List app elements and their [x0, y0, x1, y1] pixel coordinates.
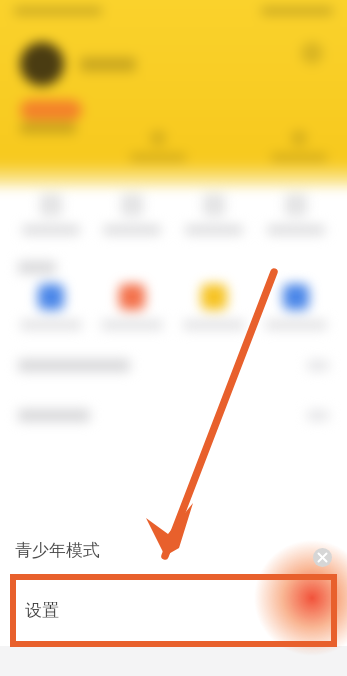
staticText: 设置 [25, 600, 59, 621]
button[interactable] [10, 284, 91, 330]
button[interactable]: Close [313, 548, 332, 567]
button[interactable]: 设置 [13, 577, 334, 644]
button[interactable] [0, 402, 347, 428]
button[interactable] [255, 284, 337, 330]
button[interactable] [255, 194, 337, 235]
button[interactable]: 青少年模式 [0, 524, 347, 576]
staticText: 青少年模式 [15, 540, 100, 561]
button[interactable] [91, 194, 173, 235]
button[interactable] [10, 194, 91, 235]
button[interactable] [91, 284, 173, 330]
button[interactable] [0, 352, 347, 378]
button[interactable] [173, 194, 255, 235]
button[interactable] [173, 284, 255, 330]
